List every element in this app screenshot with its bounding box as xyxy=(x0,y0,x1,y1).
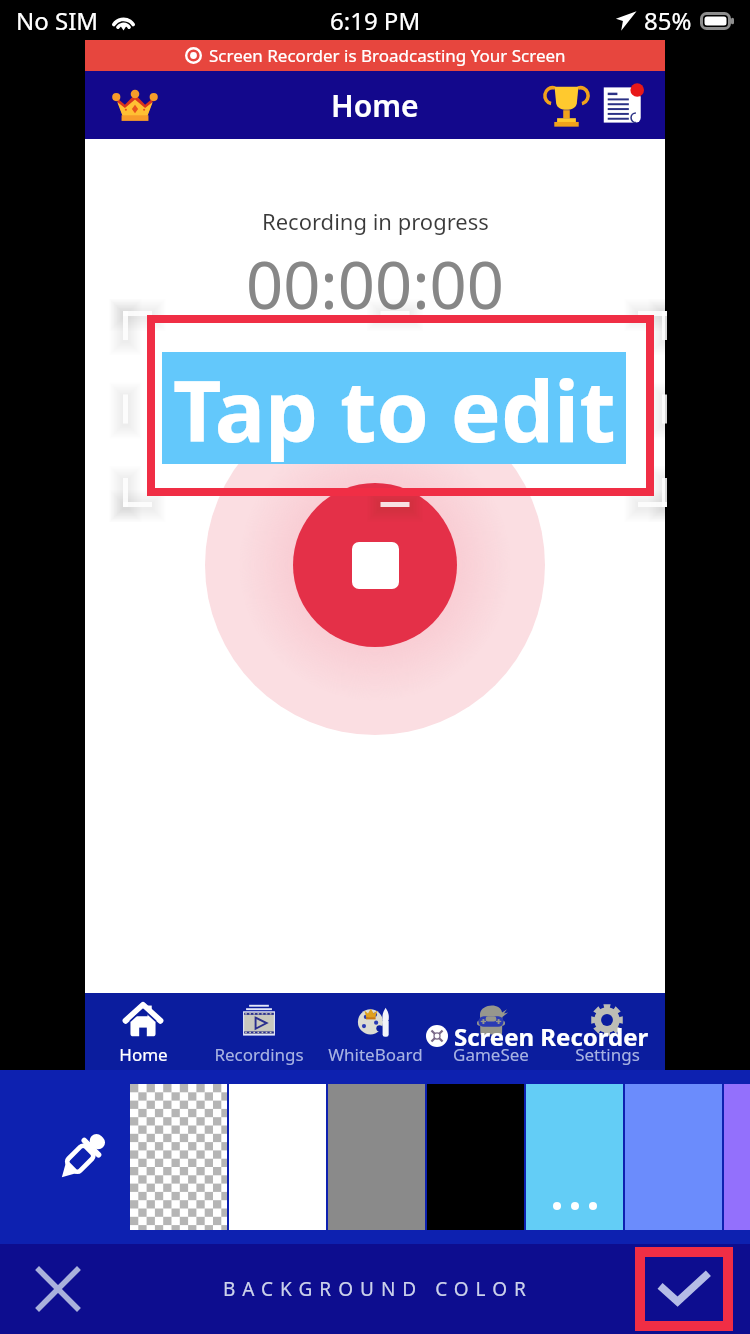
button[interactable]: Premium xyxy=(107,77,163,133)
staticText: BACKGROUND COLOR xyxy=(223,1276,533,1302)
staticText: No SIM xyxy=(16,4,99,37)
staticText: Tap to edit xyxy=(173,352,616,464)
button[interactable]: Cancel xyxy=(26,1257,90,1321)
button[interactable]: Stop recording xyxy=(205,395,545,735)
button[interactable]: Recordings xyxy=(201,993,317,1070)
button[interactable]: Settings xyxy=(549,993,665,1070)
staticText: WhiteBoard xyxy=(328,1043,423,1066)
staticText: 6:19 PM xyxy=(330,4,421,37)
staticText: Settings xyxy=(575,1043,640,1066)
button[interactable]: Color picker xyxy=(48,1123,116,1191)
staticText: GameSee xyxy=(453,1043,529,1066)
button[interactable]: Trophy xyxy=(541,80,591,130)
staticText: Recordings xyxy=(214,1043,304,1066)
staticText: Home xyxy=(331,85,419,126)
staticText: Screen Recorder xyxy=(454,1020,649,1053)
button[interactable]: GameSee xyxy=(433,993,549,1070)
button[interactable] xyxy=(526,1084,623,1230)
staticText: 00:00:00 xyxy=(246,240,504,329)
staticText: 85% xyxy=(644,4,692,37)
button[interactable]: Tap to edit text xyxy=(147,315,654,496)
staticText: Recording in progress xyxy=(262,206,489,236)
button[interactable]: WhiteBoard xyxy=(317,993,433,1070)
button[interactable]: News xyxy=(599,80,649,130)
button[interactable]: Done xyxy=(640,1252,728,1326)
button[interactable]: Home xyxy=(85,993,201,1070)
staticText: Home xyxy=(119,1043,168,1066)
button[interactable]: Screen Recorder xyxy=(426,1018,649,1054)
staticText: Screen Recorder is Broadcasting Your Scr… xyxy=(209,44,566,67)
